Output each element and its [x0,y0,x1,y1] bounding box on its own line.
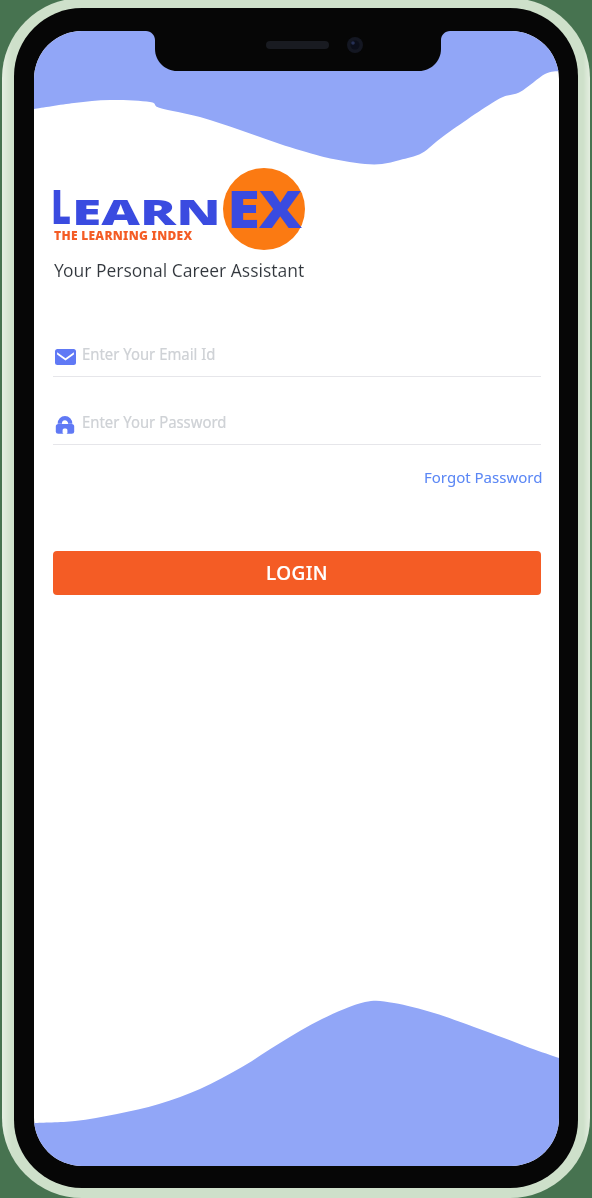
staticText: EARN [72,187,221,235]
staticText: Your Personal Career Assistant [54,257,305,282]
staticText: Enter Your Password [82,411,227,433]
button[interactable]: Password [53,400,541,448]
button[interactable]: LOGIN [53,551,541,595]
button[interactable]: Forgot Password [416,462,551,492]
other: Email [55,349,76,365]
other: Password [55,416,75,434]
staticText: LOGIN [266,560,328,586]
staticText: Enter Your Email Id [82,343,216,365]
staticText: L [51,173,71,238]
staticText: Forgot Password [424,467,543,487]
button[interactable]: Email [53,332,541,380]
staticText: THE LEARNING INDEX [54,227,193,243]
staticText: EX [227,173,302,244]
